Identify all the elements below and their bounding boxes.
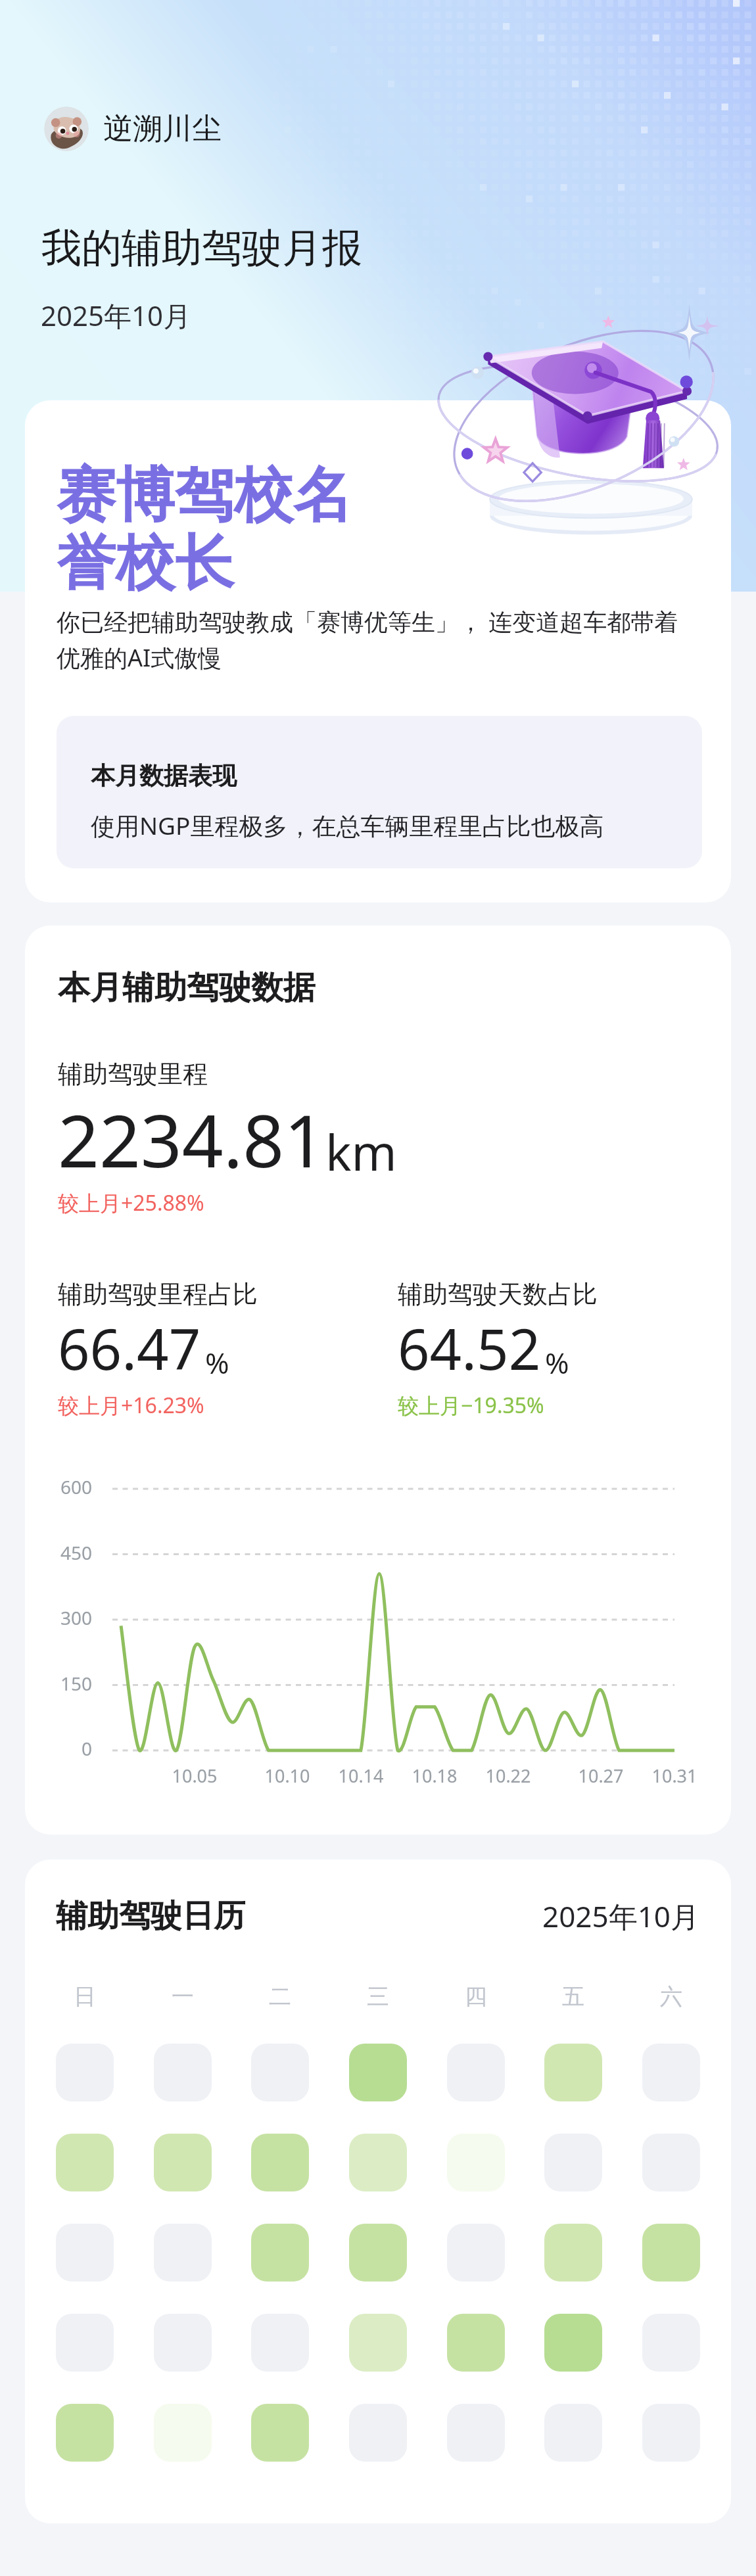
button[interactable] <box>642 2044 700 2101</box>
button[interactable] <box>349 2314 407 2372</box>
staticText: 2025年10月 <box>542 1896 700 1936</box>
button[interactable] <box>251 2134 309 2191</box>
staticText: 逆溯川尘 <box>103 110 222 148</box>
button[interactable] <box>251 2224 309 2282</box>
staticText: 10.22 <box>469 1764 548 1788</box>
staticText: 辅助驾驶日历 <box>56 1896 245 1936</box>
button[interactable] <box>447 2044 505 2101</box>
staticText: 六 <box>660 1982 682 2011</box>
staticText: 你已经把辅助驾驶教成「赛博优等生」， 连变道超车都带着 优雅的AI式傲慢 <box>57 605 678 674</box>
button[interactable] <box>544 2314 602 2372</box>
button[interactable] <box>447 2314 505 2372</box>
button[interactable] <box>349 2134 407 2191</box>
button[interactable] <box>349 2404 407 2462</box>
button[interactable] <box>251 2314 309 2372</box>
button[interactable] <box>251 2404 309 2462</box>
staticText: 10.05 <box>155 1764 234 1788</box>
button[interactable] <box>642 2134 700 2191</box>
button[interactable] <box>56 2044 114 2101</box>
button[interactable] <box>154 2044 212 2101</box>
button[interactable] <box>349 2044 407 2101</box>
staticText: 赛博驾校名 誉校长 <box>57 458 352 601</box>
button[interactable] <box>544 2224 602 2282</box>
button[interactable] <box>642 2404 700 2462</box>
button[interactable] <box>642 2314 700 2372</box>
staticText: 300 <box>57 1605 92 1630</box>
staticText: 10.27 <box>561 1764 640 1788</box>
button[interactable]: 逆溯川尘 <box>44 106 222 151</box>
button[interactable] <box>56 2314 114 2372</box>
staticText: 150 <box>57 1671 92 1696</box>
staticText: 四 <box>465 1982 487 2011</box>
staticText: 五 <box>562 1982 584 2011</box>
staticText: 64.52 <box>398 1310 541 1386</box>
staticText: 三 <box>367 1982 389 2011</box>
staticText: 辅助驾驶里程占比 <box>58 1278 258 1310</box>
staticText: 10.31 <box>635 1764 714 1788</box>
button[interactable] <box>447 2224 505 2282</box>
staticText: 10.18 <box>395 1764 474 1788</box>
button[interactable] <box>349 2224 407 2282</box>
button[interactable] <box>56 2404 114 2462</box>
button[interactable] <box>544 2044 602 2101</box>
button[interactable] <box>56 2224 114 2282</box>
staticText: 本月辅助驾驶数据 <box>58 968 316 1008</box>
button[interactable] <box>56 2134 114 2191</box>
staticText: 辅助驾驶里程 <box>58 1058 208 1090</box>
staticText: 600 <box>57 1474 92 1499</box>
button[interactable] <box>154 2134 212 2191</box>
staticText: 辅助驾驶天数占比 <box>398 1278 598 1310</box>
staticText: 我的辅助驾驶月报 <box>41 223 362 273</box>
staticText: 较上月−19.35% <box>398 1391 544 1420</box>
button[interactable] <box>544 2404 602 2462</box>
button[interactable] <box>154 2224 212 2282</box>
staticText: 使用NGP里程极多，在总车辆里程里占比也极高 <box>91 808 604 842</box>
staticText: 10.14 <box>321 1764 400 1788</box>
button[interactable] <box>447 2404 505 2462</box>
staticText: 较上月+25.88% <box>58 1188 204 1217</box>
button[interactable] <box>154 2404 212 2462</box>
staticText: % <box>205 1343 229 1382</box>
staticText: 450 <box>57 1540 92 1565</box>
staticText: 66.47 <box>58 1310 201 1386</box>
button[interactable] <box>251 2044 309 2101</box>
button[interactable] <box>544 2134 602 2191</box>
staticText: 2234.81 <box>58 1090 325 1188</box>
staticText: 本月数据表现 <box>91 761 237 791</box>
staticText: 2025年10月 <box>41 296 191 334</box>
staticText: 10.10 <box>248 1764 327 1788</box>
staticText: 较上月+16.23% <box>58 1391 204 1420</box>
staticText: % <box>545 1343 569 1382</box>
button[interactable] <box>447 2134 505 2191</box>
staticText: 二 <box>269 1982 291 2011</box>
staticText: km <box>325 1119 397 1185</box>
staticText: 日 <box>74 1982 96 2011</box>
button[interactable] <box>154 2314 212 2372</box>
staticText: 一 <box>172 1982 194 2011</box>
button[interactable] <box>642 2224 700 2282</box>
staticText: 0 <box>57 1736 92 1761</box>
